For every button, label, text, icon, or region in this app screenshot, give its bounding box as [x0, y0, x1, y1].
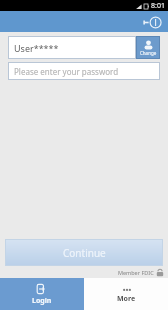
- staticText: User*****: [14, 42, 59, 54]
- staticText: Login: [32, 296, 52, 306]
- button[interactable]: Quick balance: [142, 14, 162, 30]
- staticText: Member FDIC: [118, 269, 154, 276]
- button[interactable]: Change user: [136, 36, 160, 59]
- staticText: Change: [140, 50, 157, 56]
- staticText: 8:01: [151, 1, 165, 11]
- button[interactable]: Please enter your password: [8, 62, 160, 80]
- button[interactable]: User*****: [8, 36, 136, 59]
- staticText: Continue: [63, 246, 106, 260]
- staticText: Please enter your password: [14, 66, 119, 77]
- staticText: More: [117, 294, 136, 304]
- button[interactable]: Continue: [5, 239, 163, 266]
- button[interactable]: More: [84, 278, 168, 310]
- button[interactable]: Login: [0, 278, 84, 310]
